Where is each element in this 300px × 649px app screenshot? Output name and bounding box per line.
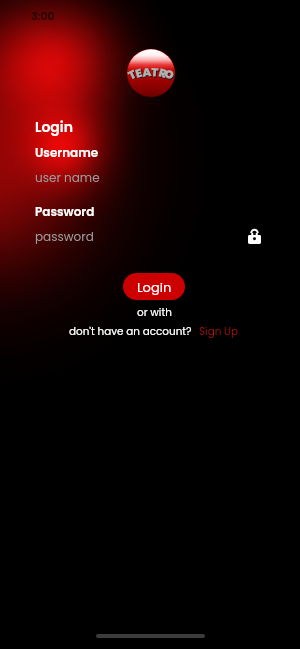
staticText: Sign Up — [199, 324, 239, 339]
staticText: 3:00 — [31, 8, 55, 23]
staticText: don't have an account? — [69, 324, 192, 339]
staticText: or with — [137, 305, 172, 320]
button[interactable]: Sign Up — [199, 324, 239, 339]
button[interactable]: Toggle password visibility — [245, 227, 263, 245]
button[interactable]: user name — [35, 169, 100, 186]
button[interactable]: password — [35, 228, 94, 245]
staticText: Password — [35, 203, 95, 220]
staticText: Login — [137, 278, 172, 296]
button[interactable]: Login — [123, 273, 185, 300]
staticText: Username — [35, 144, 99, 161]
staticText: Login — [35, 117, 73, 137]
